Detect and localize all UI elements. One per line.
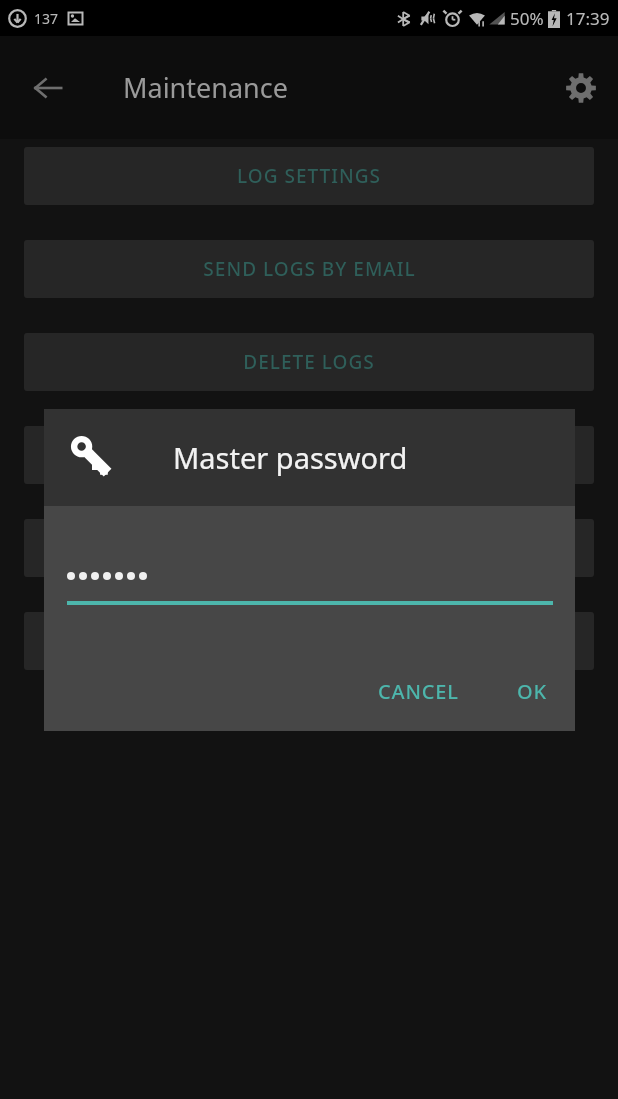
button[interactable] — [24, 426, 594, 484]
staticText: Maintenance — [123, 69, 288, 106]
button[interactable]: CANCEL — [366, 668, 471, 715]
button[interactable]: LOG SETTINGS — [24, 147, 594, 205]
staticText: LOG SETTINGS — [237, 163, 381, 189]
button[interactable]: SEND LOGS BY EMAIL — [24, 240, 594, 298]
button[interactable]: Settings — [556, 63, 606, 113]
staticText: 137 — [34, 9, 59, 28]
staticText: 50% — [510, 7, 544, 30]
staticText: OK — [517, 678, 547, 705]
staticText: DELETE LOGS — [243, 349, 375, 375]
staticText: CANCEL — [378, 678, 459, 705]
staticText: 17:39 — [566, 7, 610, 30]
button[interactable] — [24, 612, 594, 670]
button[interactable] — [24, 519, 594, 577]
button[interactable]: Back — [24, 64, 72, 112]
staticText: SEND LOGS BY EMAIL — [203, 256, 416, 282]
button[interactable]: DELETE LOGS — [24, 333, 594, 391]
staticText: Master password — [173, 438, 408, 477]
button[interactable]: OK — [505, 668, 559, 715]
